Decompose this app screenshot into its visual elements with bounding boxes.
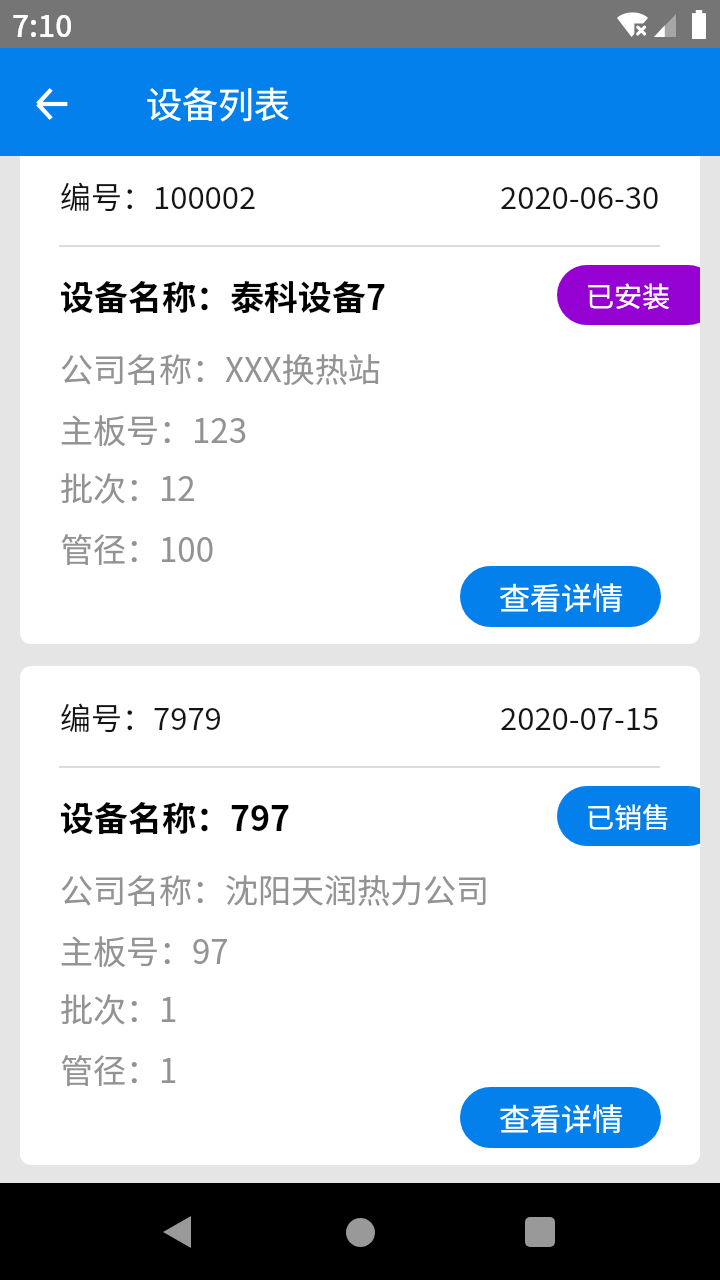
staticText: 批次：12 <box>60 463 196 511</box>
button[interactable]: 查看详情 <box>460 1087 661 1148</box>
staticText: 批次：1 <box>60 984 178 1032</box>
staticText: 查看详情 <box>499 574 623 619</box>
staticText: 编号：100002 <box>60 173 257 218</box>
staticText: 已销售 <box>586 796 671 837</box>
button[interactable]: 已安装 <box>557 265 700 325</box>
button[interactable]: Back <box>141 1196 213 1268</box>
staticText: 设备名称：泰科设备7 <box>60 271 387 320</box>
staticText: 7:10 <box>12 2 73 45</box>
button[interactable]: Recents <box>504 1196 576 1268</box>
staticText: 查看详情 <box>499 1095 623 1140</box>
staticText: 编号：7979 <box>60 694 222 739</box>
staticText: 管径：100 <box>60 524 214 572</box>
staticText: 公司名称：沈阳天润热力公司 <box>60 865 489 913</box>
staticText: 2020-06-30 <box>500 173 660 218</box>
staticText: 2020-07-15 <box>500 694 660 739</box>
staticText: 已安装 <box>586 275 671 316</box>
button[interactable]: 查看详情 <box>460 566 661 627</box>
button[interactable]: 已销售 <box>557 786 700 846</box>
button[interactable]: Back <box>17 69 87 139</box>
button[interactable]: 编号：100002 <box>20 145 700 644</box>
staticText: 主板号：97 <box>60 926 229 974</box>
staticText: 管径：1 <box>60 1045 178 1093</box>
staticText: 主板号：123 <box>60 405 247 453</box>
staticText: 设备名称：797 <box>60 792 291 841</box>
staticText: 设备列表 <box>146 76 291 128</box>
staticText: 公司名称：XXX换热站 <box>60 344 381 392</box>
button[interactable]: 编号：7979 <box>20 666 700 1165</box>
button[interactable]: Home <box>324 1196 396 1268</box>
